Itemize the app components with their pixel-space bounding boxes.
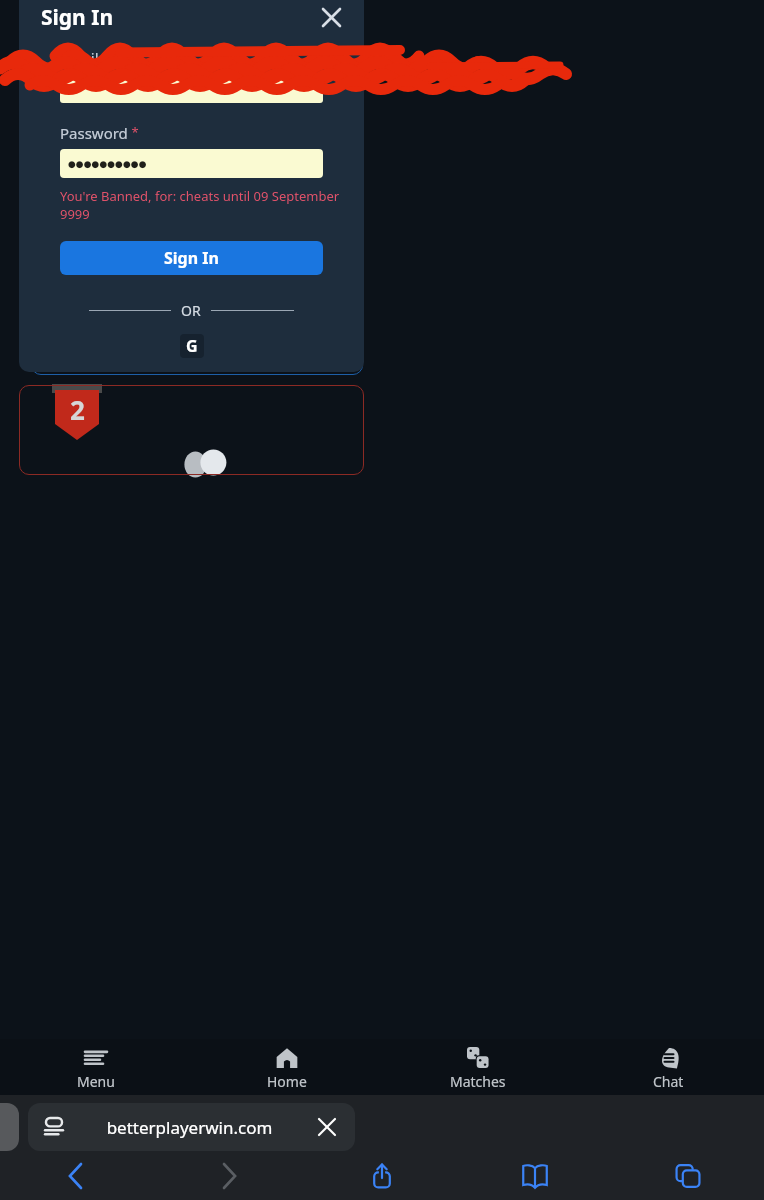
staticText: * [128,123,139,141]
button[interactable]: Back [0,1151,152,1200]
button[interactable]: Menu [0,1039,191,1096]
button[interactable]: Matches [382,1039,573,1096]
button[interactable]: Chat [573,1039,764,1096]
button[interactable]: Tabs [611,1151,764,1200]
staticText: Password [60,123,128,143]
staticText: ●●●●●●●●●● [68,159,147,169]
button[interactable]: Close [314,0,348,34]
staticText: betterplayerwin.com [64,1116,315,1139]
button[interactable]: Sign In [60,241,323,275]
staticText: Email [60,48,99,68]
staticText: Sign In [41,3,114,32]
button[interactable]: Forward [152,1151,305,1200]
button[interactable]: Share [305,1151,458,1200]
staticText: You're Banned, for: cheats until 09 Sept… [60,187,364,223]
staticText: 2 [70,392,85,427]
button[interactable]: Previous tab [0,1103,19,1151]
button[interactable]: betterplayerwin.com [28,1103,355,1151]
button[interactable]: Bookmarks [458,1151,611,1200]
staticText: * [99,48,110,66]
staticText: OR [181,301,201,320]
staticText: Sign In [164,247,219,269]
staticText: Matches [450,1072,506,1091]
button[interactable]: Home [191,1039,382,1096]
button[interactable]: ●●●●●●●●●● [60,149,323,178]
button[interactable]: Stop loading [315,1115,339,1139]
staticText: Menu [77,1072,115,1091]
button[interactable] [60,74,323,103]
staticText: G [186,335,198,357]
staticText: Home [267,1072,307,1091]
staticText: Chat [653,1072,684,1091]
button[interactable]: Sign in with Google [180,334,204,358]
